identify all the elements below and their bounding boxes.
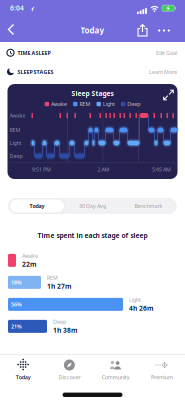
button[interactable]: Community — [92, 358, 139, 381]
staticText: 9:51 PM — [32, 166, 51, 173]
button[interactable]: Discover — [46, 358, 92, 381]
button[interactable]: Expand — [163, 88, 173, 100]
staticText: 6:04 — [10, 3, 24, 12]
button[interactable]: Today — [9, 199, 64, 213]
staticText: Benchmark — [134, 202, 162, 210]
staticText: 22m — [22, 260, 37, 269]
staticText: 1h 38m — [53, 326, 78, 335]
button[interactable]: Back — [5, 23, 19, 37]
staticText: Today — [16, 373, 31, 381]
staticText: 4h 26m — [129, 304, 154, 313]
staticText: Light — [129, 296, 141, 303]
staticText: Deep — [53, 318, 66, 325]
staticText: 30 Day Avg — [79, 202, 106, 210]
button[interactable]: 30 Day Avg — [64, 198, 120, 214]
staticText: Today — [29, 202, 44, 210]
staticText: Deep — [127, 100, 140, 108]
staticText: 56% — [11, 301, 22, 308]
staticText: TIME ASLEEP — [17, 49, 50, 57]
staticText: Sleep Stages — [71, 89, 113, 98]
staticText: Premium — [151, 373, 173, 381]
staticText: Light — [9, 139, 21, 147]
staticText: Awake — [22, 252, 38, 259]
staticText: Discover — [58, 373, 80, 381]
button[interactable]: Edit Goal — [156, 49, 177, 57]
staticText: 2 AM — [97, 166, 109, 173]
staticText: Awake — [9, 112, 25, 119]
staticText: 5:45 AM — [152, 166, 171, 173]
button[interactable]: More — [156, 24, 172, 37]
staticText: SLEEP STAGES — [17, 68, 53, 76]
staticText: Awake — [51, 100, 67, 108]
staticText: REM — [79, 100, 90, 108]
button[interactable]: Premium — [139, 358, 185, 381]
button[interactable]: Benchmark — [120, 198, 176, 214]
staticText: Today — [80, 25, 104, 36]
staticText: Edit Goal — [156, 49, 177, 57]
staticText: 1h 27m — [47, 282, 72, 291]
button[interactable]: Share — [137, 24, 149, 37]
staticText: Deep — [9, 152, 22, 160]
staticText: Light — [103, 100, 115, 108]
staticText: Time spent in each stage of sleep — [37, 231, 147, 240]
staticText: 21% — [11, 323, 22, 330]
staticText: REM — [47, 274, 58, 281]
button[interactable]: Today — [0, 358, 46, 381]
button[interactable]: Learn More — [149, 68, 177, 76]
staticText: Community — [102, 373, 130, 381]
staticText: Learn More — [149, 68, 177, 76]
staticText: 18% — [11, 279, 22, 286]
staticText: REM — [9, 126, 20, 134]
